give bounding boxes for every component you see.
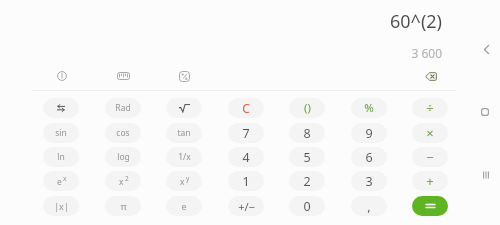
staticText: % [364,100,374,116]
button[interactable]: Back [472,35,500,63]
staticText: x [119,176,124,188]
button[interactable]: Home [471,98,499,126]
button[interactable]: () [289,98,325,118]
button[interactable]: 5 [289,147,325,167]
staticText: Rad [115,102,131,114]
staticText: cos [116,127,130,139]
staticText: 5 [303,149,311,166]
button[interactable]: % [351,98,387,118]
staticText: ÷ [426,99,434,117]
button[interactable]: × [412,123,448,143]
staticText: π [120,200,127,213]
button[interactable]: ln [43,147,79,167]
button[interactable]: , [351,196,387,216]
staticText: 9 [365,125,373,142]
button[interactable]: e [43,171,79,191]
button[interactable]: 1/x [166,147,202,167]
button[interactable]: cos [105,123,141,143]
button[interactable]: 3 [351,171,387,191]
staticText: 60^(2) [390,9,442,31]
button[interactable]: 6 [351,147,387,167]
staticText: ln [57,151,65,163]
button[interactable]: Unit converter [109,62,137,90]
staticText: sin [55,127,67,139]
staticText: × [426,124,434,142]
staticText: 2 [125,174,129,183]
button[interactable]: Rad [105,98,141,118]
staticText: log [117,151,130,163]
staticText: 6 [365,149,373,166]
staticText: , [367,198,371,215]
button[interactable]: 1 [228,171,264,191]
button[interactable]: 7 [228,123,264,143]
staticText: C [242,100,250,116]
button[interactable]: e [166,196,202,216]
button[interactable] [166,98,202,118]
button[interactable]: 0 [289,196,325,216]
button[interactable]: x [105,171,141,191]
staticText: y [186,174,190,183]
button[interactable]: |x| [43,196,79,216]
button[interactable]: 2 [289,171,325,191]
button[interactable] [412,196,448,216]
button[interactable]: 8 [289,123,325,143]
staticText: x [63,174,67,183]
staticText: 1/x [178,151,191,163]
button[interactable]: log [105,147,141,167]
button[interactable]: π [105,196,141,216]
button[interactable]: x [166,171,202,191]
staticText: x [180,176,185,188]
button[interactable]: 9 [351,123,387,143]
staticText: 3 600 [411,45,442,59]
staticText: () [304,100,311,116]
staticText: 0 [303,198,311,215]
button[interactable]: tan [166,123,202,143]
button[interactable]: 4 [228,147,264,167]
button[interactable]: Scientific calculator [170,62,198,90]
button[interactable]: C [228,98,264,118]
staticText: +/− [238,199,255,214]
button[interactable]: sin [43,123,79,143]
staticText: e [57,176,62,188]
button[interactable]: ÷ [412,98,448,118]
button[interactable]: Backspace [417,62,445,90]
button[interactable] [43,98,79,118]
staticText: 4 [242,149,250,166]
staticText: |x| [54,200,69,212]
staticText: 7 [242,125,250,142]
staticText: 2 [303,173,311,190]
button[interactable]: +/− [228,196,264,216]
staticText: − [426,148,434,166]
staticText: e [181,200,187,212]
staticText: tan [177,127,191,139]
staticText: 1 [242,173,250,190]
button[interactable]: + [412,171,448,191]
staticText: 8 [303,125,311,142]
button[interactable]: Recent apps [472,161,500,189]
staticText: 3 [365,173,373,190]
staticText: + [426,172,434,190]
button[interactable]: History [48,62,76,90]
button[interactable]: − [412,147,448,167]
